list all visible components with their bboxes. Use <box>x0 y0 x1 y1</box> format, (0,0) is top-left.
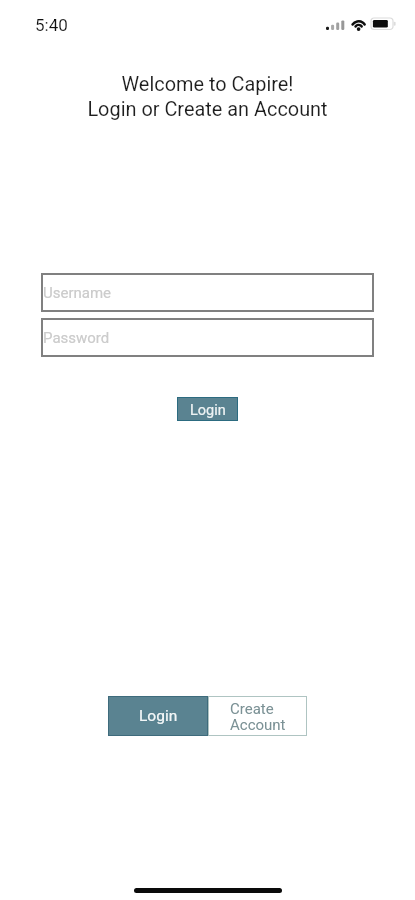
staticText: Create Account <box>230 700 286 734</box>
other: Battery <box>369 16 397 32</box>
button[interactable]: Login <box>108 696 208 736</box>
staticText: Login <box>190 402 226 419</box>
staticText: Password <box>43 329 110 347</box>
button[interactable]: Password <box>41 318 374 357</box>
staticText: Login <box>139 707 178 725</box>
other: Wi-Fi <box>350 17 368 31</box>
staticText: Username <box>43 284 112 302</box>
other: Cellular signal <box>326 18 346 31</box>
button[interactable]: Create Account <box>208 696 307 736</box>
button[interactable]: Username <box>41 273 374 312</box>
button[interactable]: Login <box>177 397 238 421</box>
staticText: 5:40 <box>35 15 68 35</box>
staticText: Welcome to Capire! Login or Create an Ac… <box>87 73 328 121</box>
